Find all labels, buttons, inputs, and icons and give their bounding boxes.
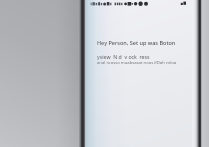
staticText: anal roosso muabsasat noos ifDah roloa: [97, 60, 177, 66]
button[interactable]: Hey Person, Set up was Boton: [86, 39, 195, 66]
staticText: yview N d v ock ress: [97, 53, 150, 60]
staticText: Hey Person, Set up was Boton: [97, 39, 176, 46]
other: Status bar: [86, 1, 195, 9]
